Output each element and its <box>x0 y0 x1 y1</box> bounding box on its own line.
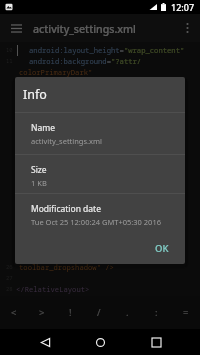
staticText: / <box>97 306 101 319</box>
staticText: 10 <box>6 46 13 53</box>
staticText: 28 <box>6 285 13 292</box>
button[interactable]: Recent apps <box>140 329 172 355</box>
staticText: : <box>155 306 158 319</box>
staticText: activity_settings.xml <box>31 136 102 146</box>
button[interactable]: Navigation menu <box>0 14 32 42</box>
staticText: android:layout_height="wrap_content" <box>29 45 185 55</box>
staticText: </RelativeLayout> <box>16 284 90 294</box>
button[interactable]: / <box>84 296 113 329</box>
staticText: ! <box>69 306 72 319</box>
staticText: 26 <box>6 263 13 270</box>
staticText: Size <box>31 164 47 176</box>
staticText: Name <box>31 122 55 134</box>
button[interactable]: ! <box>56 296 84 329</box>
button[interactable]: < <box>0 296 28 329</box>
staticText: toolbar_dropshadow" /> <box>19 262 114 272</box>
button[interactable]: OK <box>151 240 173 257</box>
staticText: OK <box>155 242 169 255</box>
staticText: 27 <box>6 274 13 281</box>
button[interactable]: > <box>28 296 56 329</box>
staticText: = <box>183 306 189 319</box>
staticText: < <box>11 306 17 319</box>
staticText: activity_settings.xml <box>33 22 136 36</box>
staticText: 1 KB <box>31 178 47 188</box>
staticText: 11 <box>6 57 13 64</box>
staticText: colorPrimaryDark" <box>19 67 93 77</box>
staticText: Modification date <box>31 203 101 215</box>
button[interactable]: = <box>171 296 200 329</box>
staticText: Info <box>23 86 47 103</box>
button[interactable]: Back <box>29 329 61 355</box>
staticText: 12:07 <box>171 1 195 13</box>
staticText: . <box>126 306 129 319</box>
staticText: android:background="?attr/ <box>29 56 142 66</box>
staticText: Tue Oct 25 12:00:24 GMT+05:30 2016 <box>31 217 161 227</box>
staticText: > <box>39 306 45 319</box>
button[interactable]: Home <box>84 329 116 355</box>
button[interactable]: More options <box>174 14 200 42</box>
